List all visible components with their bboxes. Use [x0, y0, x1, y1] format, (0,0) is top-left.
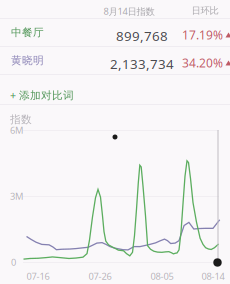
- staticText: 3M: [10, 190, 23, 202]
- button[interactable]: + 添加对比词: [10, 88, 74, 102]
- staticText: 中餐厅: [11, 26, 44, 39]
- staticText: 08-05: [150, 270, 173, 282]
- staticText: 07-26: [88, 270, 111, 282]
- staticText: 日环比: [191, 5, 218, 16]
- staticText: 指数: [10, 113, 32, 126]
- staticText: 07-16: [26, 270, 49, 282]
- staticText: 08-14: [201, 270, 224, 282]
- staticText: + 添加对比词: [10, 88, 74, 102]
- staticText: 17.19%: [182, 27, 223, 43]
- staticText: 0: [11, 256, 16, 268]
- staticText: 2,133,734: [110, 55, 174, 73]
- staticText: 黄晓明: [11, 54, 44, 67]
- staticText: 899,768: [116, 27, 168, 45]
- staticText: 8月14日指数: [103, 5, 154, 17]
- staticText: 6M: [10, 124, 23, 136]
- staticText: 34.20%: [182, 55, 223, 71]
